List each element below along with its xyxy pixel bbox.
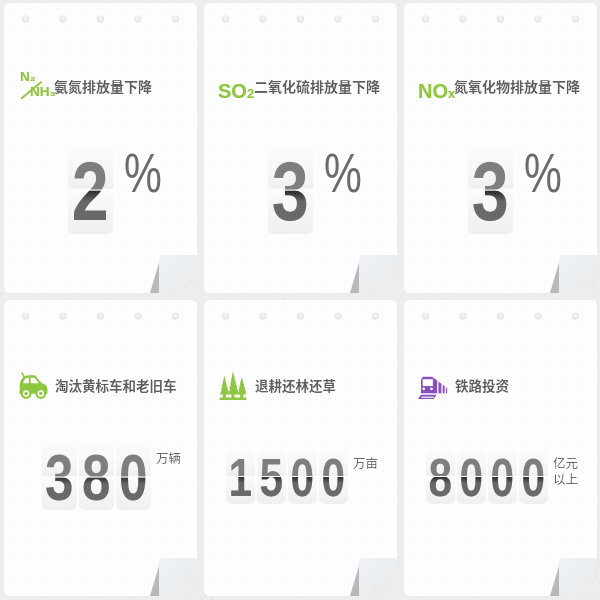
button[interactable]: NO bbox=[404, 3, 597, 293]
staticText: x bbox=[448, 86, 456, 101]
button[interactable]: N₂ bbox=[4, 3, 197, 293]
staticText: 万亩 bbox=[353, 453, 379, 471]
staticText: 铁路投资 bbox=[455, 375, 509, 395]
staticText: 以上 bbox=[553, 469, 579, 487]
staticText: 2 bbox=[247, 86, 255, 101]
other: Car bbox=[18, 369, 48, 400]
staticText: NH₃ bbox=[30, 84, 56, 99]
staticText: 二氧化硫排放量下降 bbox=[254, 76, 380, 96]
staticText: 氨氮排放量下降 bbox=[54, 76, 152, 96]
staticText: % bbox=[524, 141, 562, 204]
staticText: 万辆 bbox=[156, 448, 182, 466]
staticText: SO bbox=[218, 80, 247, 102]
staticText: 氮氧化物排放量下降 bbox=[454, 76, 580, 96]
staticText: NO bbox=[418, 80, 448, 102]
staticText: N₂ bbox=[20, 69, 36, 84]
button[interactable]: SO bbox=[204, 3, 397, 293]
button[interactable]: Trees bbox=[204, 300, 397, 596]
staticText: 淘汰黄标车和老旧车 bbox=[55, 375, 177, 395]
other: Trees bbox=[218, 369, 248, 400]
staticText: % bbox=[124, 141, 162, 204]
other: Train bbox=[418, 369, 448, 400]
button[interactable]: Car bbox=[4, 300, 197, 596]
staticText: 退耕还林还草 bbox=[255, 375, 336, 395]
staticText: 亿元 bbox=[553, 453, 579, 471]
button[interactable]: Train bbox=[404, 300, 597, 596]
staticText: % bbox=[324, 141, 362, 204]
